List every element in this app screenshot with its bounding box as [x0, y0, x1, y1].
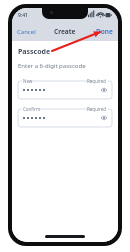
staticText: Create	[54, 27, 76, 36]
button[interactable]: Show passcode	[100, 114, 108, 122]
staticText: Confirm	[23, 106, 41, 112]
staticText: Passcode	[18, 47, 51, 57]
button[interactable]: Done	[81, 22, 113, 41]
button[interactable]: New	[18, 77, 112, 99]
staticText: Cancel	[17, 28, 36, 36]
staticText: Done	[96, 27, 113, 36]
button[interactable]: Confirm	[18, 105, 112, 127]
staticText: New	[23, 78, 33, 84]
staticText: Required	[87, 106, 107, 112]
staticText: Required	[87, 78, 107, 84]
button[interactable]: Cancel	[17, 22, 49, 41]
button[interactable]: Show passcode	[100, 86, 108, 94]
staticText: 9:41	[18, 12, 28, 19]
staticText: Enter a 6-digit passcode	[18, 62, 86, 70]
